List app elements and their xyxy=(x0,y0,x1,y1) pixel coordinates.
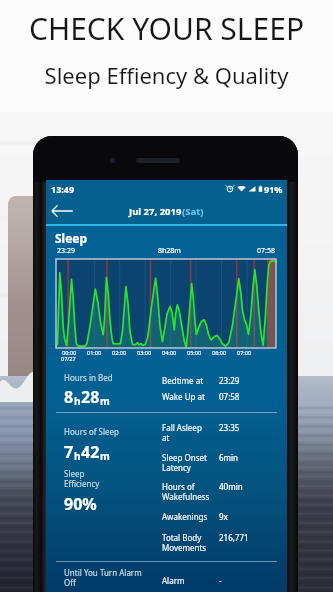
staticText: Sleep Effiency & Quality xyxy=(0,60,333,90)
staticText: h xyxy=(74,449,81,463)
staticText: 07/27 xyxy=(61,355,76,362)
staticText: 216,771 xyxy=(219,532,249,543)
staticText: Sleep Onset Latency xyxy=(162,452,207,473)
staticText: Awakenings xyxy=(162,511,208,522)
staticText: h xyxy=(74,394,81,408)
staticText: Bedtime at xyxy=(162,375,204,386)
staticText: Sleep Efficiency xyxy=(64,468,100,489)
staticText: Wake Up at xyxy=(162,391,205,402)
staticText: 06:00 xyxy=(212,349,227,356)
button[interactable]: Back xyxy=(50,201,74,221)
staticText: 91% xyxy=(264,183,283,195)
staticText: 07:00 xyxy=(237,349,252,356)
staticText: 8 xyxy=(64,386,74,408)
staticText: 23:35 xyxy=(219,422,240,433)
staticText: 8h28m xyxy=(158,246,181,256)
staticText: - xyxy=(219,575,222,586)
staticText: 28 xyxy=(81,386,100,408)
staticText: Hours of Wakefulness xyxy=(162,481,210,502)
staticText: Hours of Sleep xyxy=(64,426,119,437)
staticText: m xyxy=(100,449,110,463)
staticText: Alarm xyxy=(162,575,185,586)
staticText: 23:29 xyxy=(57,246,75,256)
staticText: 01:00 xyxy=(87,349,102,356)
staticText: 90% xyxy=(64,493,97,515)
staticText: 03:00 xyxy=(137,349,152,356)
staticText: 13:49 xyxy=(51,183,75,195)
staticText: 23:29 xyxy=(219,375,240,386)
staticText: 40min xyxy=(219,481,243,492)
staticText: 9x xyxy=(219,511,228,522)
staticText: CHECK YOUR SLEEP xyxy=(0,8,333,49)
staticText: 05:00 xyxy=(187,349,202,356)
staticText: 7 xyxy=(64,441,74,463)
staticText: Until You Turn Alarm Off xyxy=(64,567,142,588)
staticText: 6min xyxy=(219,452,239,463)
staticText: 02:00 xyxy=(112,349,127,356)
staticText: Hours in Bed xyxy=(64,372,113,383)
staticText: 07:58 xyxy=(219,391,240,402)
staticText: 42 xyxy=(81,441,100,463)
staticText: 04:00 xyxy=(162,349,177,356)
staticText: Fall Asleep at xyxy=(162,422,202,443)
staticText: (Sat) xyxy=(182,205,204,218)
staticText: Total Body Movements xyxy=(162,532,207,553)
staticText: Jul 27, 2019 xyxy=(129,205,182,218)
staticText: Sleep xyxy=(55,230,88,246)
staticText: 07:58 xyxy=(257,246,275,256)
staticText: 00:00 xyxy=(62,349,77,356)
staticText: m xyxy=(100,394,110,408)
